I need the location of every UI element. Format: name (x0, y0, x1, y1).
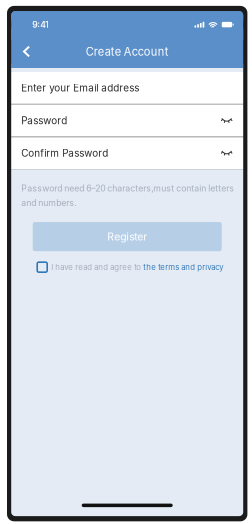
staticText: the terms and privacy (143, 262, 223, 272)
staticText: 9:41 (32, 19, 49, 30)
staticText: Confirm Password (21, 147, 108, 159)
staticText: and numbers. (21, 198, 76, 208)
button[interactable]: Confirm Password (11, 137, 243, 169)
button[interactable]: the terms and privacy (143, 262, 223, 272)
staticText: I have read and agree to (51, 262, 143, 272)
button[interactable]: Back (16, 40, 38, 64)
button[interactable]: Enter your Email address (11, 72, 243, 104)
staticText: Password (21, 115, 67, 126)
button[interactable]: Password (11, 105, 243, 136)
staticText: Register (107, 230, 147, 243)
staticText: Password need 6–20 characters,must conta… (21, 183, 234, 194)
button[interactable]: Register (33, 222, 222, 251)
staticText: Create Account (86, 45, 169, 58)
button[interactable]: Agree to the terms and privacy (37, 262, 47, 272)
staticText: Enter your Email address (21, 82, 139, 94)
